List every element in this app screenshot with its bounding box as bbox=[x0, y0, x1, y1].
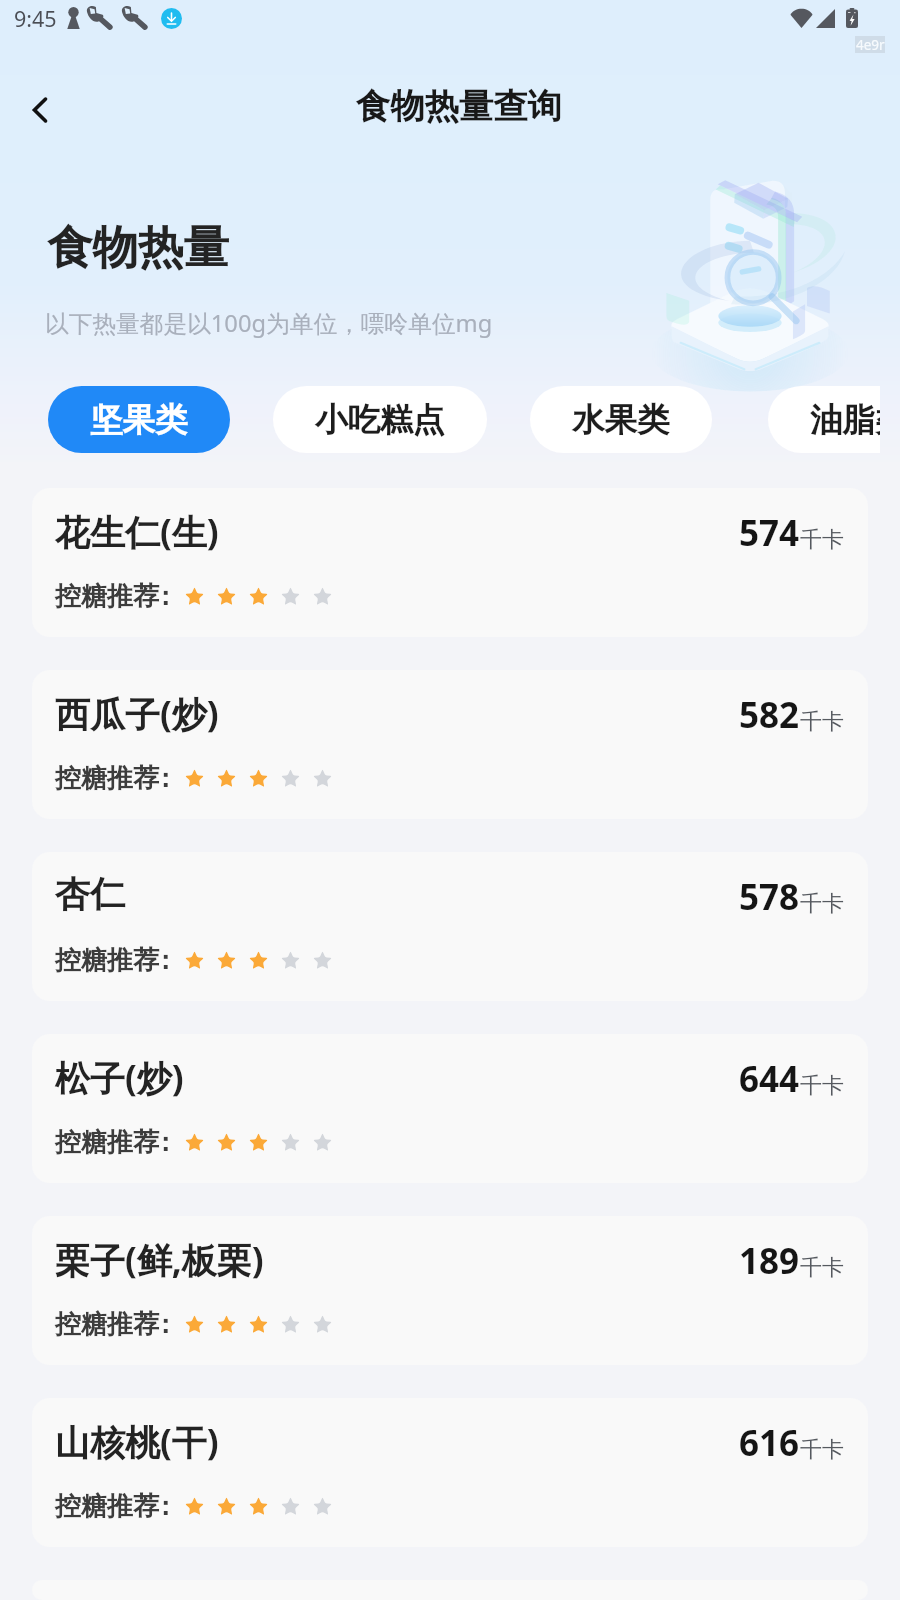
staticText: 578 bbox=[739, 873, 800, 921]
staticText: 西瓜子(炒) bbox=[55, 690, 219, 738]
staticText: 控糖推荐 bbox=[55, 944, 159, 977]
staticText: 以下热量都是以100g为单位，嘌呤单位mg bbox=[45, 307, 493, 339]
staticText: 644 bbox=[739, 1055, 800, 1103]
staticText: 574 bbox=[739, 509, 800, 557]
staticText: ： bbox=[152, 1126, 178, 1159]
staticText: 小吃糕点 bbox=[315, 400, 445, 441]
button[interactable]: 水果类 bbox=[530, 386, 712, 453]
button[interactable]: 杏仁 bbox=[32, 852, 868, 1001]
staticText: 控糖推荐 bbox=[55, 580, 159, 613]
staticText: 松子(炒) bbox=[55, 1054, 184, 1102]
button[interactable]: 山核桃(干) bbox=[32, 1398, 868, 1547]
button[interactable]: 栗子(鲜,板栗) bbox=[32, 1216, 868, 1365]
staticText: 水果类 bbox=[572, 400, 670, 441]
staticText: 千卡 bbox=[800, 708, 844, 736]
staticText: 栗子(鲜,板栗) bbox=[55, 1236, 264, 1284]
staticText: 食物热量 bbox=[47, 219, 229, 276]
staticText: 189 bbox=[739, 1237, 800, 1285]
button[interactable]: 西瓜子(炒) bbox=[32, 670, 868, 819]
staticText: 坚果类 bbox=[90, 400, 188, 441]
staticText: 582 bbox=[739, 691, 800, 739]
button[interactable]: 坚果类 bbox=[48, 386, 230, 453]
staticText: 千卡 bbox=[800, 1436, 844, 1464]
staticText: 控糖推荐 bbox=[55, 762, 159, 795]
staticText: ： bbox=[152, 580, 178, 613]
staticText: ： bbox=[152, 762, 178, 795]
staticText: 千卡 bbox=[800, 1254, 844, 1282]
staticText: 9:45 bbox=[14, 4, 57, 33]
staticText: 油脂类 bbox=[810, 400, 880, 441]
staticText: 千卡 bbox=[800, 890, 844, 918]
button[interactable]: 小吃糕点 bbox=[273, 386, 487, 453]
staticText: 控糖推荐 bbox=[55, 1126, 159, 1159]
staticText: ： bbox=[152, 1490, 178, 1523]
button[interactable]: 油脂类 bbox=[768, 386, 880, 453]
staticText: 花生仁(生) bbox=[55, 508, 219, 556]
staticText: ： bbox=[152, 944, 178, 977]
staticText: 616 bbox=[739, 1419, 800, 1467]
staticText: 千卡 bbox=[800, 526, 844, 554]
staticText: 山核桃(干) bbox=[55, 1418, 219, 1466]
staticText: 4e9r bbox=[856, 36, 885, 53]
staticText: 食物热量查询 bbox=[356, 85, 562, 128]
button[interactable]: 花生仁(生) bbox=[32, 488, 868, 637]
staticText: 控糖推荐 bbox=[55, 1308, 159, 1341]
button[interactable]: 松子(炒) bbox=[32, 1034, 868, 1183]
staticText: ： bbox=[152, 1308, 178, 1341]
staticText: 千卡 bbox=[800, 1072, 844, 1100]
staticText: 杏仁 bbox=[55, 872, 125, 916]
staticText: 控糖推荐 bbox=[55, 1490, 159, 1523]
button[interactable]: Back bbox=[11, 81, 69, 139]
